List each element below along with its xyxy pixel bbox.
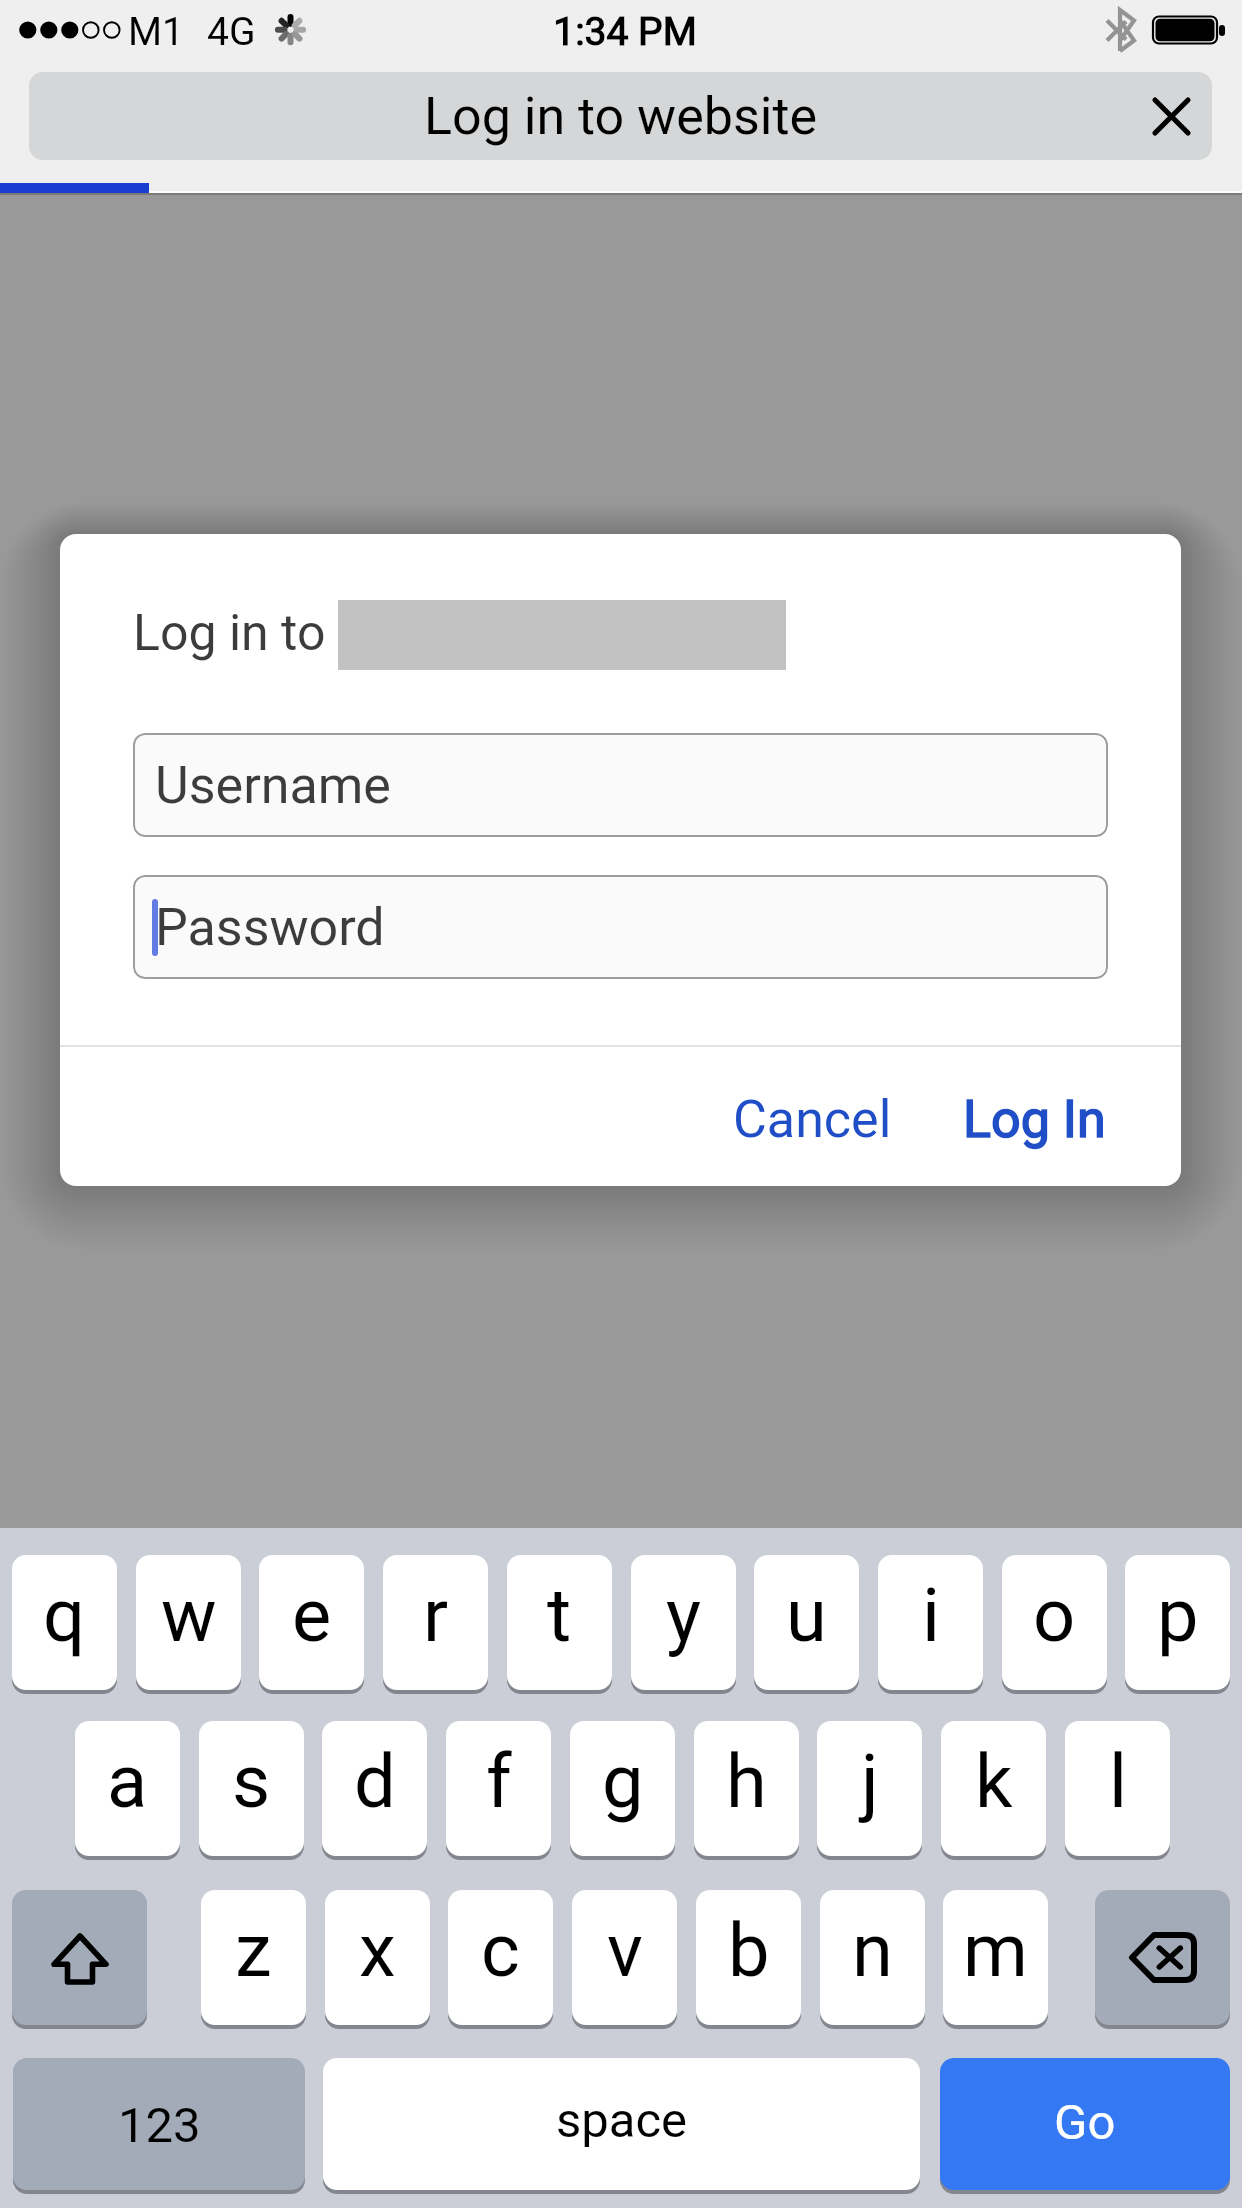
button[interactable]: g [570,1721,675,1856]
staticText: x [359,1907,396,1994]
staticText: o [1033,1572,1076,1659]
button[interactable]: Backspace [1095,1890,1230,2025]
button[interactable]: Log in to website [29,72,1212,160]
staticText: r [423,1572,449,1659]
button[interactable]: d [322,1721,427,1856]
staticText: m [963,1907,1028,1994]
staticText: f [486,1738,512,1825]
button[interactable]: c [448,1890,553,2025]
staticText: k [975,1738,1013,1825]
staticText: z [235,1907,272,1994]
staticText: Password [155,897,385,958]
staticText: space [556,2092,688,2149]
staticText: Log in to [133,604,338,663]
staticText: c [481,1907,520,1994]
button[interactable]: Username [133,733,1108,837]
button[interactable]: Stop loading [1130,72,1212,160]
button[interactable]: x [325,1890,430,2025]
button[interactable]: l [1065,1721,1170,1856]
button[interactable]: f [446,1721,551,1856]
staticText: Go [1054,2094,1116,2151]
staticText: l [1109,1738,1127,1825]
button[interactable]: q [12,1555,117,1690]
staticText: Username [155,755,391,816]
button[interactable]: o [1002,1555,1107,1690]
staticText: 1:34 PM [4,9,1242,55]
staticText: y [666,1572,702,1659]
staticText: u [786,1572,827,1659]
staticText: b [728,1907,770,1994]
staticText: 123 [118,2097,201,2154]
staticText: 4G [207,9,256,55]
staticText: Cancel [733,1089,892,1150]
staticText: Log in to website [424,86,817,147]
button[interactable]: 123 [13,2058,305,2190]
button[interactable]: h [694,1721,799,1856]
button[interactable]: s [199,1721,304,1856]
button[interactable]: space [323,2058,920,2190]
button[interactable]: k [941,1721,1046,1856]
staticText: t [547,1572,572,1659]
staticText: s [232,1738,271,1825]
staticText: w [161,1572,217,1659]
button[interactable]: r [383,1555,488,1690]
staticText: g [602,1738,644,1825]
button[interactable]: Password [133,875,1108,979]
staticText: i [922,1572,940,1659]
button[interactable]: e [259,1555,364,1690]
button[interactable]: n [820,1890,925,2025]
button[interactable]: w [136,1555,241,1690]
button[interactable]: m [943,1890,1048,2025]
staticText: Log In [963,1089,1106,1150]
button[interactable]: Log In [930,1049,1138,1186]
button[interactable]: a [75,1721,180,1856]
button[interactable]: Cancel [702,1049,922,1186]
button[interactable]: Shift [12,1890,147,2025]
button[interactable]: t [507,1555,612,1690]
button[interactable]: v [572,1890,677,2025]
button[interactable]: u [754,1555,859,1690]
button[interactable]: i [878,1555,983,1690]
staticText: q [43,1572,86,1659]
staticText: a [107,1738,148,1825]
button[interactable]: b [696,1890,801,2025]
staticText: v [607,1907,643,1994]
staticText: p [1157,1572,1199,1659]
button[interactable]: Go [940,2058,1230,2190]
button[interactable]: j [817,1721,922,1856]
staticText: j [861,1738,879,1825]
button[interactable]: y [631,1555,736,1690]
button[interactable]: p [1125,1555,1230,1690]
staticText: n [852,1907,893,1994]
staticText: h [726,1738,767,1825]
staticText: e [292,1572,332,1659]
staticText: M1 [128,9,184,55]
staticText: d [354,1738,396,1825]
button[interactable]: z [201,1890,306,2025]
